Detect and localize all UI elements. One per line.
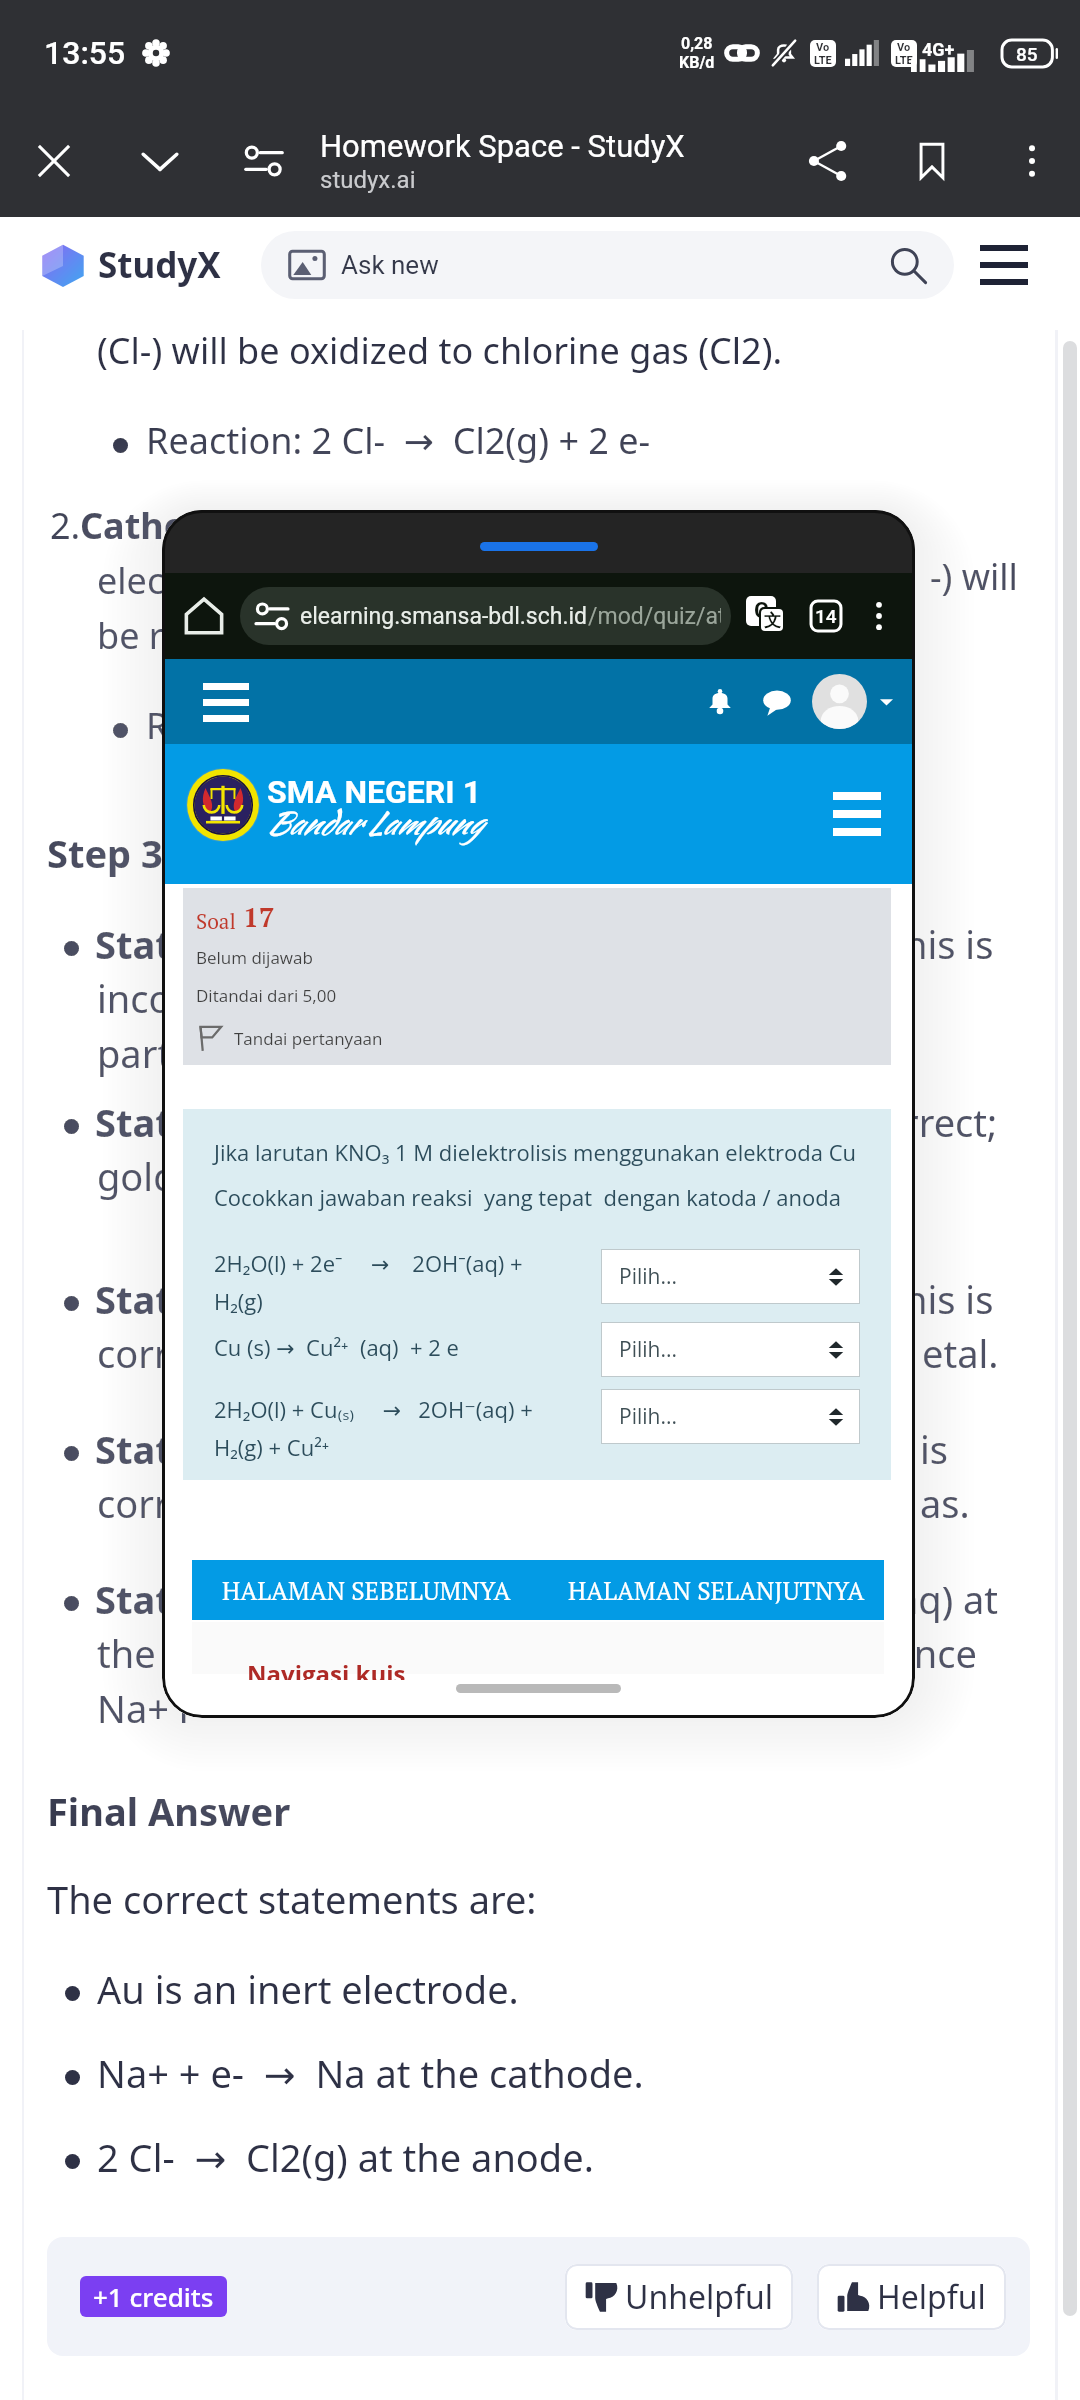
staticText: 2H₂O(l) + 2e⁻ → 2OH⁻(aq) + [214,1248,523,1278]
staticText: Vo [897,41,911,54]
button[interactable]: Site settings [212,105,316,217]
staticText: 17 [243,898,275,935]
button[interactable]: Share [776,105,880,217]
staticText: Pilih... [619,1402,677,1431]
button[interactable]: Unhelpful [565,2264,793,2330]
staticText: 2. [50,501,90,550]
staticText: HALAMAN SEBELUMNYA [222,1574,511,1607]
button[interactable]: Minimize [108,105,212,217]
staticText: Reaction: Na+ [146,701,380,750]
staticText: gold is inert [97,1150,309,1202]
staticText: Cu (s) → Cu²⁺ (aq) + 2 e [214,1332,459,1362]
staticText: Vo [816,41,830,54]
button[interactable]: Helpful [817,2264,1006,2330]
staticText: as. [920,1477,970,1529]
staticText: H₂(g) [214,1286,263,1316]
staticText: SMA NEGERI 1 [267,773,482,811]
staticText: Cocokkan jawaban reaksi yang tepat denga… [214,1182,841,1212]
staticText: 85 [1016,43,1038,65]
staticText: Navigasi kuis [247,1657,406,1690]
staticText: Au is an inert electrode. [97,1963,519,2015]
staticText: Jika larutan KNO₃ 1 M dielektrolisis men… [214,1137,856,1167]
button[interactable]: Pilih... [601,1249,860,1304]
staticText: 13:55 [44,34,126,72]
staticText: his is [904,1273,994,1325]
button[interactable]: HALAMAN SELANJUTNYA [542,1560,884,1620]
button[interactable]: +1 credits [80,2276,227,2317]
button[interactable]: Pilih... [601,1389,860,1444]
staticText: The correct statements are: [47,1873,537,1925]
staticText: Ditandai dari 5,00 [196,984,337,1007]
staticText: Pilih... [619,1262,677,1291]
button[interactable]: Menu [196,672,256,732]
button[interactable]: Bookmark [880,105,984,217]
button[interactable]: Pilih... [601,1322,860,1377]
button[interactable]: More options [984,105,1080,217]
staticText: +1 credits [93,2279,214,2314]
staticText: rrect; [903,1096,998,1148]
staticText: his is [904,918,994,970]
staticText: participate [97,1027,289,1079]
staticText: correct [97,1327,223,1379]
button[interactable]: Site menu [827,784,887,844]
staticText: be reduced [97,611,288,660]
staticText: etal. [922,1327,999,1379]
staticText: -) will [930,552,1018,601]
staticText: 0,28 [681,34,713,53]
staticText: Statement [95,918,296,970]
button[interactable]: Profile [812,674,867,729]
staticText: aq) at [897,1573,999,1625]
staticText: G [754,598,769,624]
button[interactable]: elearning.smansa-bdl.sch.id [240,587,731,645]
staticText: 2 Cl- → Cl2(g) at the anode. [97,2131,594,2183]
button[interactable]: HALAMAN SEBELUMNYA [192,1560,522,1620]
button[interactable]: Tandai pertanyaan [196,1021,383,1055]
staticText: Ask new [341,250,439,280]
staticText: 4G+ [922,39,955,60]
staticText: Na+ + e- → Na at the cathode. [97,2047,644,2099]
button[interactable]: Home [176,588,232,644]
staticText: Bandar Lampung [265,800,481,845]
staticText: Belum dijawab [196,946,313,969]
staticText: 2H₂O(l) + Cu₍ₛ₎ → 2OH⁻(aq) + [214,1394,533,1424]
staticText: Statement [95,1273,296,1325]
staticText: HALAMAN SELANJUTNYA [568,1574,865,1607]
staticText: (Cl-) will be oxidized to chlorine gas (… [97,326,783,375]
staticText: 文 [764,610,781,631]
staticText: KB/d [679,53,715,72]
staticText: Unhelpful [625,2275,773,2319]
staticText: Cathode [80,501,231,550]
staticText: /mod/quiz/at [588,603,721,630]
staticText: is [920,1423,949,1475]
staticText: Tandai pertanyaan [234,1027,383,1050]
staticText: Pilih... [619,1335,677,1364]
staticText: Statement [95,1423,296,1475]
staticText: studyx.ai [320,166,416,194]
staticText: Homework Space - StudyX [320,128,685,164]
button[interactable]: Close [0,105,108,217]
staticText: the cathode [97,1627,311,1679]
button[interactable]: Tabs [803,593,849,639]
staticText: StudyX [98,241,221,289]
staticText: LTE [895,54,913,67]
staticText: Statement [95,1096,296,1148]
staticText: Helpful [877,2275,986,2319]
staticText: correct [97,1477,223,1529]
staticText: electrode [97,556,256,605]
staticText: elearning.smansa-bdl.sch.id [300,603,588,630]
staticText: Statement [95,1573,296,1625]
staticText: Reaction: 2 Cl- → Cl2(g) + 2 e- [146,416,651,465]
button[interactable]: Translate [743,593,789,639]
staticText: incorrect [97,972,256,1024]
staticText: Na+ i [97,1682,189,1734]
staticText: LTE [814,54,832,67]
staticText: Final Answer [47,1785,291,1837]
button[interactable]: Ask new [261,231,954,299]
staticText: 14 [815,605,837,627]
staticText: H₂(g) + Cu²⁺ [214,1432,330,1462]
staticText: ince [904,1627,977,1679]
staticText: Soal [196,907,236,935]
staticText: Step 3 [47,827,163,879]
button[interactable]: More [857,594,901,638]
button[interactable]: Menu [976,237,1032,293]
